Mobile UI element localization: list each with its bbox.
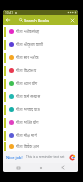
button[interactable]: गीता कर्म सन्यास [3,90,78,103]
button[interactable]: Recent apps [11,163,25,172]
staticText: गीता श्रीकृष्ण वाणी [16,42,43,47]
staticText: This is a reminder text set [26,155,65,159]
button[interactable]: गीता विवेक ज्ञान [3,142,78,151]
button[interactable]: गीता मोक्ष मार्ग [3,129,78,142]
staticText: Search Books [24,18,50,23]
staticText: गीता कर्म सन्यास [16,94,41,99]
staticText: गीता विश्वरूप [16,68,37,73]
button[interactable]: Back [56,163,70,172]
button[interactable]: Home [34,163,48,172]
staticText: गीता भक्ति योग [16,120,39,125]
staticText: गीता सार श्लोक [16,55,39,60]
button[interactable]: गीता श्रीकृष्ण वाणी [3,38,78,51]
staticText: गीता ध्यान योग [16,81,38,86]
button[interactable]: गीता भगवद पाठ [3,103,78,116]
button[interactable]: गीता ध्यान योग [3,77,78,90]
staticText: गीता मोक्ष मार्ग [16,133,37,138]
staticText: गीता श्लोकसंग्रह [16,29,40,34]
button[interactable]: गीता भक्ति योग [3,116,78,129]
staticText: गीता भगवद पाठ [16,107,40,112]
staticText: Nice job! [6,155,23,160]
staticText: 10:41 [5,11,14,15]
button[interactable]: गीता श्लोकसंग्रह [3,25,78,38]
button[interactable]: Back [4,16,12,24]
staticText: गीता विवेक ज्ञान [16,144,40,149]
button[interactable]: गीता विश्वरूप [3,64,78,77]
button[interactable]: Clear search [68,16,77,25]
button[interactable]: Back [3,15,78,25]
button[interactable]: Google Assistant [69,154,76,161]
button[interactable]: गीता सार श्लोक [3,51,78,64]
